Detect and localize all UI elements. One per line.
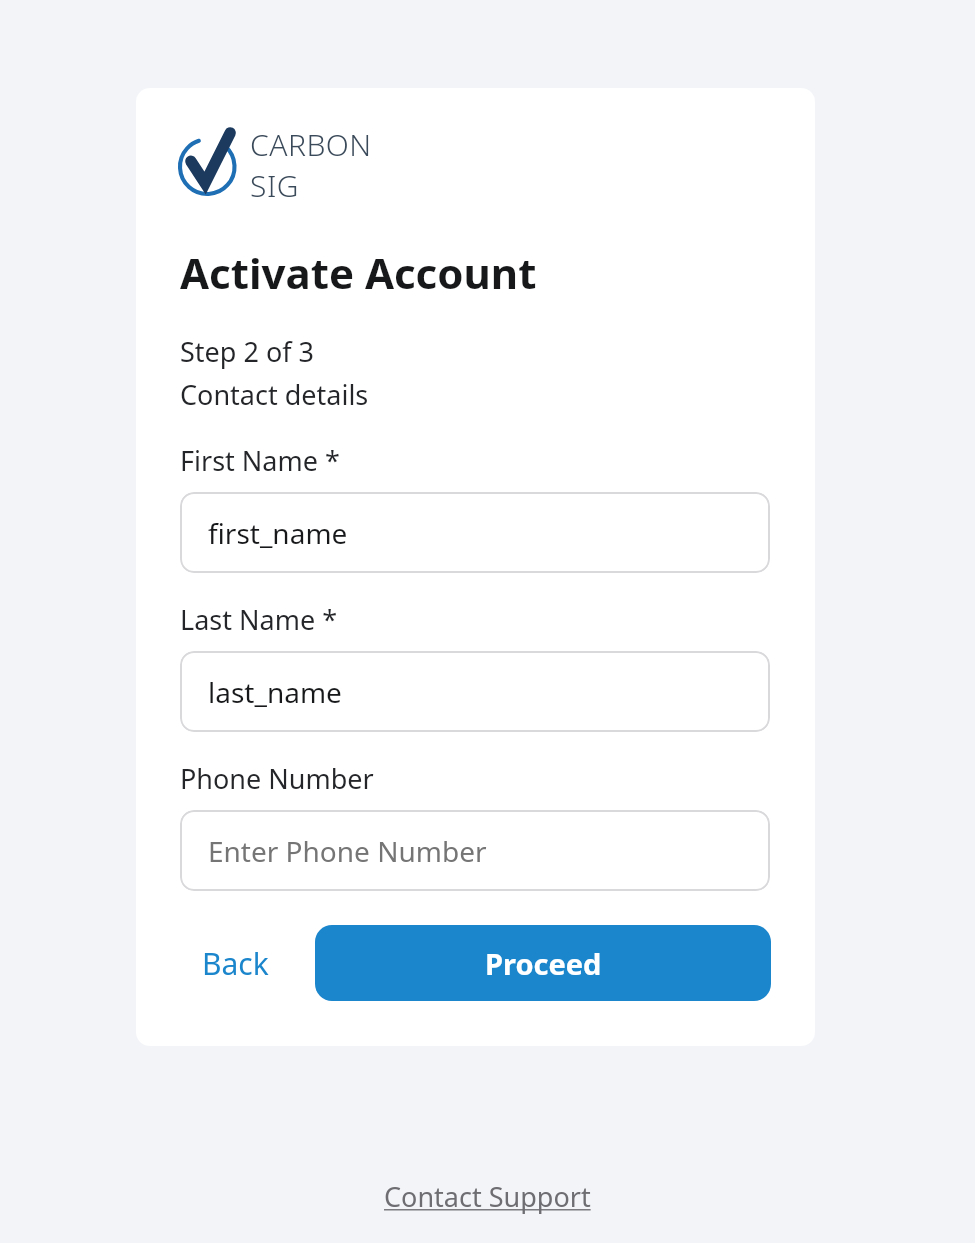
button[interactable]: first_name bbox=[180, 492, 770, 573]
staticText: Contact Support bbox=[384, 1178, 591, 1215]
staticText: Proceed bbox=[485, 944, 602, 983]
button[interactable]: Enter Phone Number bbox=[180, 810, 770, 891]
staticText: Phone Number bbox=[180, 760, 374, 797]
other: Carbon SIG logo bbox=[180, 134, 238, 196]
staticText: Step 2 of 3 bbox=[180, 333, 314, 370]
staticText: Contact details bbox=[180, 376, 369, 413]
staticText: Activate Account bbox=[180, 244, 537, 301]
staticText: CARBON bbox=[250, 124, 372, 165]
staticText: Last Name * bbox=[180, 601, 338, 638]
staticText: First Name * bbox=[180, 442, 340, 479]
button[interactable]: last_name bbox=[180, 651, 770, 732]
staticText: last_name bbox=[208, 673, 342, 711]
button[interactable]: Back bbox=[180, 929, 291, 998]
staticText: first_name bbox=[208, 514, 348, 552]
staticText: Back bbox=[202, 943, 269, 984]
button[interactable]: Contact Support bbox=[370, 1172, 605, 1221]
staticText: SIG bbox=[250, 165, 299, 206]
staticText: Enter Phone Number bbox=[208, 832, 487, 870]
button[interactable]: Proceed bbox=[315, 925, 771, 1001]
